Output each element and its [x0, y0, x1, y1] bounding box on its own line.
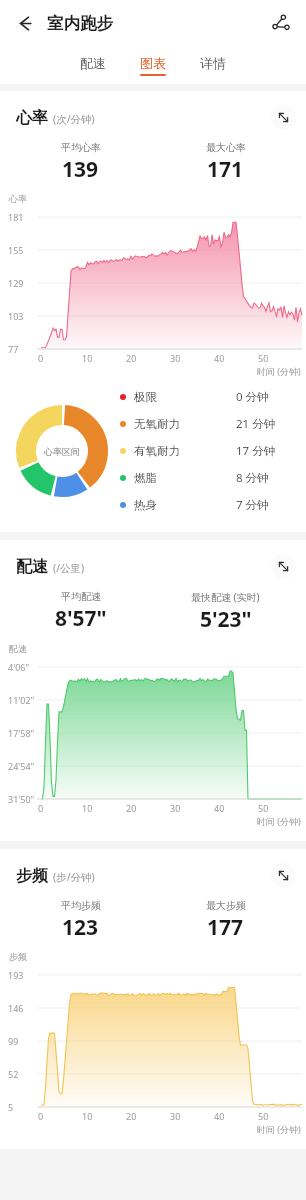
- staticText: 0: [38, 352, 44, 364]
- staticText: 10: [82, 1110, 93, 1122]
- button[interactable]: 无氧耐力: [120, 410, 294, 437]
- staticText: 配速: [16, 557, 48, 577]
- staticText: 20: [126, 1110, 137, 1122]
- staticText: 平均心率: [61, 141, 101, 154]
- staticText: 24'54": [8, 760, 35, 772]
- staticText: 20: [126, 352, 137, 364]
- staticText: 139: [62, 155, 99, 184]
- staticText: 时间 (分钟): [257, 815, 301, 827]
- staticText: 图表: [140, 55, 166, 71]
- staticText: 103: [8, 310, 24, 322]
- button[interactable]: 详情: [193, 53, 233, 78]
- staticText: 室内跑步: [47, 13, 113, 34]
- staticText: 181: [8, 211, 24, 223]
- staticText: 平均配速: [61, 590, 101, 603]
- staticText: 0: [38, 802, 44, 814]
- staticText: 30: [170, 802, 181, 814]
- staticText: 155: [8, 244, 24, 256]
- staticText: 10: [82, 352, 93, 364]
- staticText: 最大步频: [206, 899, 246, 912]
- staticText: 0: [38, 1110, 44, 1122]
- staticText: 8'57": [55, 604, 107, 633]
- button[interactable]: 配速: [73, 53, 113, 78]
- staticText: 50: [258, 802, 269, 814]
- button[interactable]: 极限: [120, 383, 294, 410]
- staticText: 心率: [16, 108, 48, 128]
- staticText: 17 分钟: [236, 443, 294, 459]
- staticText: 99: [8, 1035, 19, 1047]
- button[interactable]: Expand 心率: [271, 105, 296, 130]
- staticText: 193: [8, 969, 24, 981]
- staticText: 171: [207, 155, 244, 184]
- staticText: 146: [8, 1002, 24, 1014]
- staticText: 时间 (分钟): [257, 1123, 301, 1135]
- staticText: 129: [8, 277, 24, 289]
- button[interactable]: Back: [8, 6, 42, 40]
- staticText: 5'23": [200, 605, 252, 634]
- button[interactable]: Share: [264, 6, 298, 40]
- staticText: 40: [214, 1110, 225, 1122]
- staticText: 最快配速 (实时): [191, 590, 260, 604]
- staticText: 极限: [134, 390, 236, 404]
- staticText: 20: [126, 802, 137, 814]
- staticText: 步频: [16, 866, 48, 886]
- staticText: 40: [214, 352, 225, 364]
- button[interactable]: Expand 配速: [271, 554, 296, 579]
- staticText: (/公里): [53, 561, 85, 575]
- staticText: (步/分钟): [53, 870, 95, 884]
- staticText: 21 分钟: [236, 416, 294, 432]
- staticText: 时间 (分钟): [257, 365, 301, 377]
- staticText: 心率区间: [44, 446, 80, 457]
- staticText: 52: [8, 1068, 19, 1080]
- button[interactable]: 有氧耐力: [120, 437, 294, 464]
- staticText: 50: [258, 1110, 269, 1122]
- button[interactable]: 燃脂: [120, 464, 294, 491]
- staticText: 心率: [9, 193, 27, 204]
- staticText: 77: [8, 343, 19, 355]
- staticText: 10: [82, 802, 93, 814]
- staticText: 配速: [80, 55, 106, 71]
- staticText: 7 分钟: [236, 497, 294, 513]
- staticText: 步频: [9, 951, 27, 962]
- staticText: (次/分钟): [53, 112, 95, 126]
- staticText: 燃脂: [134, 471, 236, 485]
- staticText: 有氧耐力: [134, 444, 236, 458]
- staticText: 30: [170, 352, 181, 364]
- staticText: 平均步频: [61, 899, 101, 912]
- button[interactable]: 热身: [120, 491, 294, 518]
- button[interactable]: 图表: [133, 53, 173, 78]
- staticText: 4'06": [8, 661, 30, 673]
- staticText: 热身: [134, 498, 236, 512]
- staticText: 11'02": [8, 694, 35, 706]
- staticText: 17'58": [8, 727, 35, 739]
- staticText: 31'50": [8, 793, 35, 805]
- staticText: 30: [170, 1110, 181, 1122]
- staticText: 5: [8, 1101, 14, 1113]
- staticText: 最大心率: [206, 141, 246, 154]
- staticText: 123: [62, 913, 99, 942]
- staticText: 50: [258, 352, 269, 364]
- staticText: 0 分钟: [236, 389, 294, 405]
- staticText: 40: [214, 802, 225, 814]
- button[interactable]: Expand 步频: [271, 863, 296, 888]
- staticText: 无氧耐力: [134, 417, 236, 431]
- staticText: 详情: [200, 55, 226, 71]
- staticText: 配速: [9, 643, 27, 654]
- staticText: 177: [207, 913, 244, 942]
- staticText: 8 分钟: [236, 470, 294, 486]
